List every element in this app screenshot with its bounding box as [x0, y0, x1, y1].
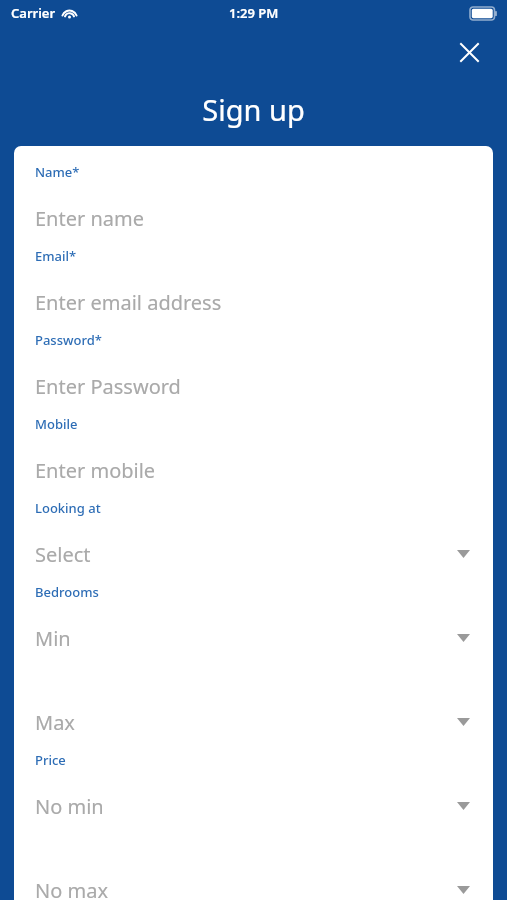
staticText: Enter mobile [35, 457, 477, 484]
button[interactable]: Enter mobile [35, 441, 477, 499]
button[interactable]: Select [35, 525, 477, 583]
staticText: Bedrooms [35, 583, 99, 601]
button[interactable]: No min [35, 777, 477, 835]
staticText: Min [35, 625, 464, 652]
staticText: 1:29 PM [229, 4, 279, 22]
button[interactable]: Min [35, 609, 477, 667]
staticText: No max [35, 877, 464, 900]
staticText: Looking at [35, 499, 101, 517]
staticText: Max [35, 709, 464, 736]
staticText: Password* [35, 331, 102, 349]
staticText: Carrier [11, 4, 56, 22]
staticText: No min [35, 793, 464, 820]
staticText: Sign up [202, 90, 305, 129]
button[interactable]: Enter name [35, 189, 477, 247]
staticText: Price [35, 751, 66, 769]
staticText: Email* [35, 247, 77, 265]
staticText: Select [35, 541, 464, 568]
staticText: Mobile [35, 415, 78, 433]
button[interactable]: Max [35, 693, 477, 751]
staticText: Name* [35, 163, 80, 181]
button[interactable]: Enter Password [35, 357, 477, 415]
button[interactable]: No max [35, 861, 477, 900]
staticText: Enter Password [35, 373, 477, 400]
button[interactable]: Close [451, 34, 487, 70]
button[interactable]: Enter email address [35, 273, 477, 331]
staticText: Enter email address [35, 289, 477, 316]
staticText: Enter name [35, 205, 477, 232]
